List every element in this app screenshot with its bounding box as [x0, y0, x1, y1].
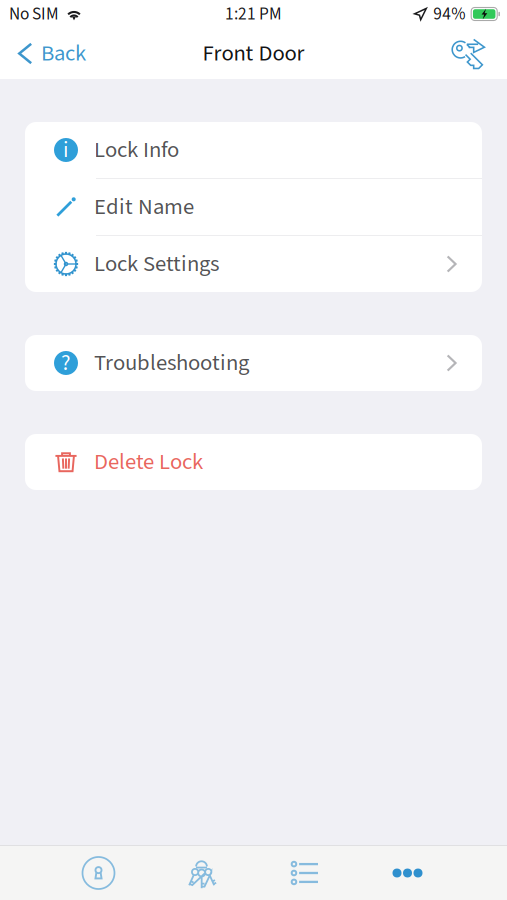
- button[interactable]: Delete Lock: [25, 434, 482, 490]
- button[interactable]: Locks: [47, 846, 150, 900]
- staticText: Back: [41, 37, 86, 70]
- staticText: No SIM: [9, 2, 59, 26]
- button[interactable]: i: [25, 122, 482, 178]
- staticText: i: [63, 134, 69, 166]
- button[interactable]: Back: [0, 31, 96, 75]
- button[interactable]: Lock Settings: [25, 236, 482, 292]
- button[interactable]: Keys: [150, 846, 253, 900]
- staticText: Lock Info: [94, 134, 179, 166]
- staticText: 94%: [433, 2, 465, 26]
- button[interactable]: Edit Name: [25, 179, 482, 235]
- button[interactable]: Activity: [253, 846, 356, 900]
- staticText: Delete Lock: [94, 446, 203, 478]
- button[interactable]: More: [356, 846, 459, 900]
- staticText: Lock Settings: [94, 248, 219, 280]
- staticText: ?: [61, 347, 71, 379]
- staticText: Edit Name: [94, 191, 194, 223]
- staticText: Troubleshooting: [94, 347, 249, 379]
- staticText: Front Door: [202, 37, 304, 70]
- button[interactable]: Share key: [440, 31, 507, 75]
- staticText: 1:21 PM: [225, 2, 282, 26]
- button[interactable]: ?: [25, 335, 482, 391]
